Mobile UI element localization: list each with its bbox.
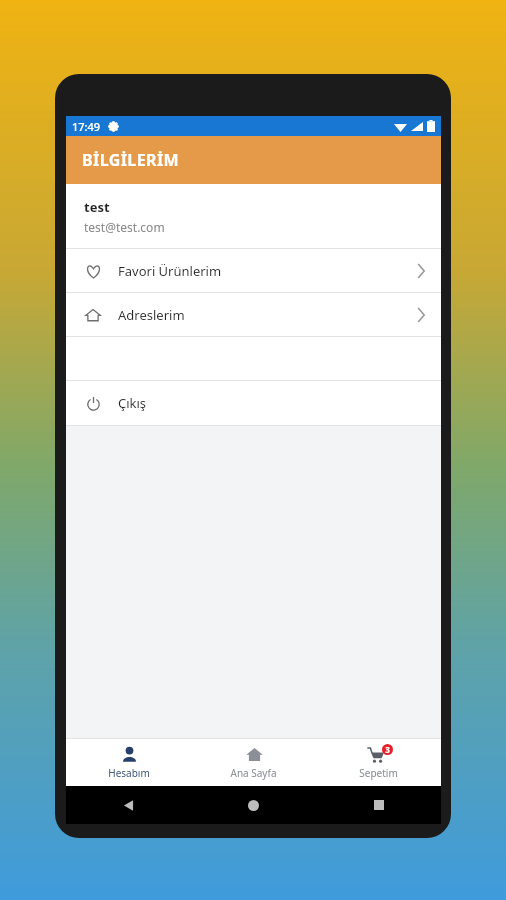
button[interactable]: Çıkış: [66, 381, 441, 425]
staticText: Çıkış: [118, 394, 147, 412]
button[interactable]: test: [66, 184, 441, 248]
staticText: BİLGİLERİM: [82, 149, 180, 171]
staticText: Adreslerim: [118, 306, 185, 324]
button[interactable]: Favori Ürünlerim: [66, 249, 441, 292]
staticText: test: [84, 198, 110, 216]
button[interactable]: Adreslerim: [66, 293, 441, 336]
button[interactable]: Hesabım: [66, 738, 191, 786]
staticText: Hesabım: [108, 766, 150, 780]
staticText: Ana Sayfa: [230, 766, 277, 780]
staticText: Favori Ürünlerim: [118, 262, 222, 280]
button[interactable]: Ana Sayfa: [191, 738, 316, 786]
staticText: 17:49: [72, 119, 101, 134]
button[interactable]: 3: [316, 738, 441, 786]
staticText: 3: [385, 744, 390, 755]
staticText: Sepetim: [359, 766, 398, 780]
staticText: test@test.com: [84, 219, 165, 235]
